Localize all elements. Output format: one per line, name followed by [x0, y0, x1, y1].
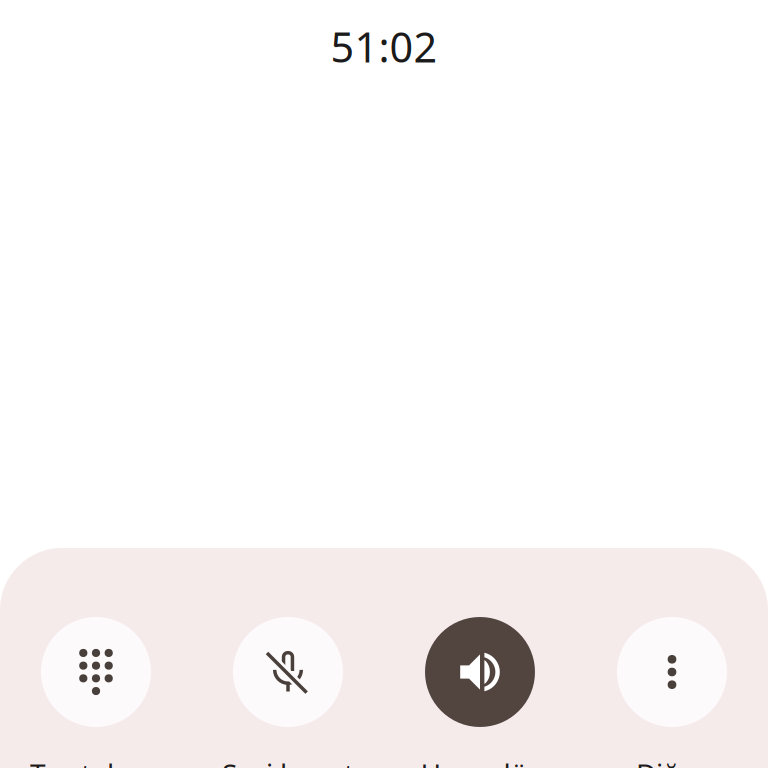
staticText: Diğer	[636, 755, 708, 768]
staticText: Sesi kapat	[222, 755, 354, 768]
staticText: Tuş takımı	[30, 755, 162, 768]
button[interactable]: Hoparlör	[384, 617, 576, 727]
staticText: Hoparlör	[420, 755, 539, 768]
button[interactable]: Tuş takımı	[0, 617, 192, 727]
button[interactable]: Sesi kapat	[192, 617, 384, 727]
staticText: 51:02	[330, 19, 437, 74]
button[interactable]: Diğer	[576, 617, 768, 727]
